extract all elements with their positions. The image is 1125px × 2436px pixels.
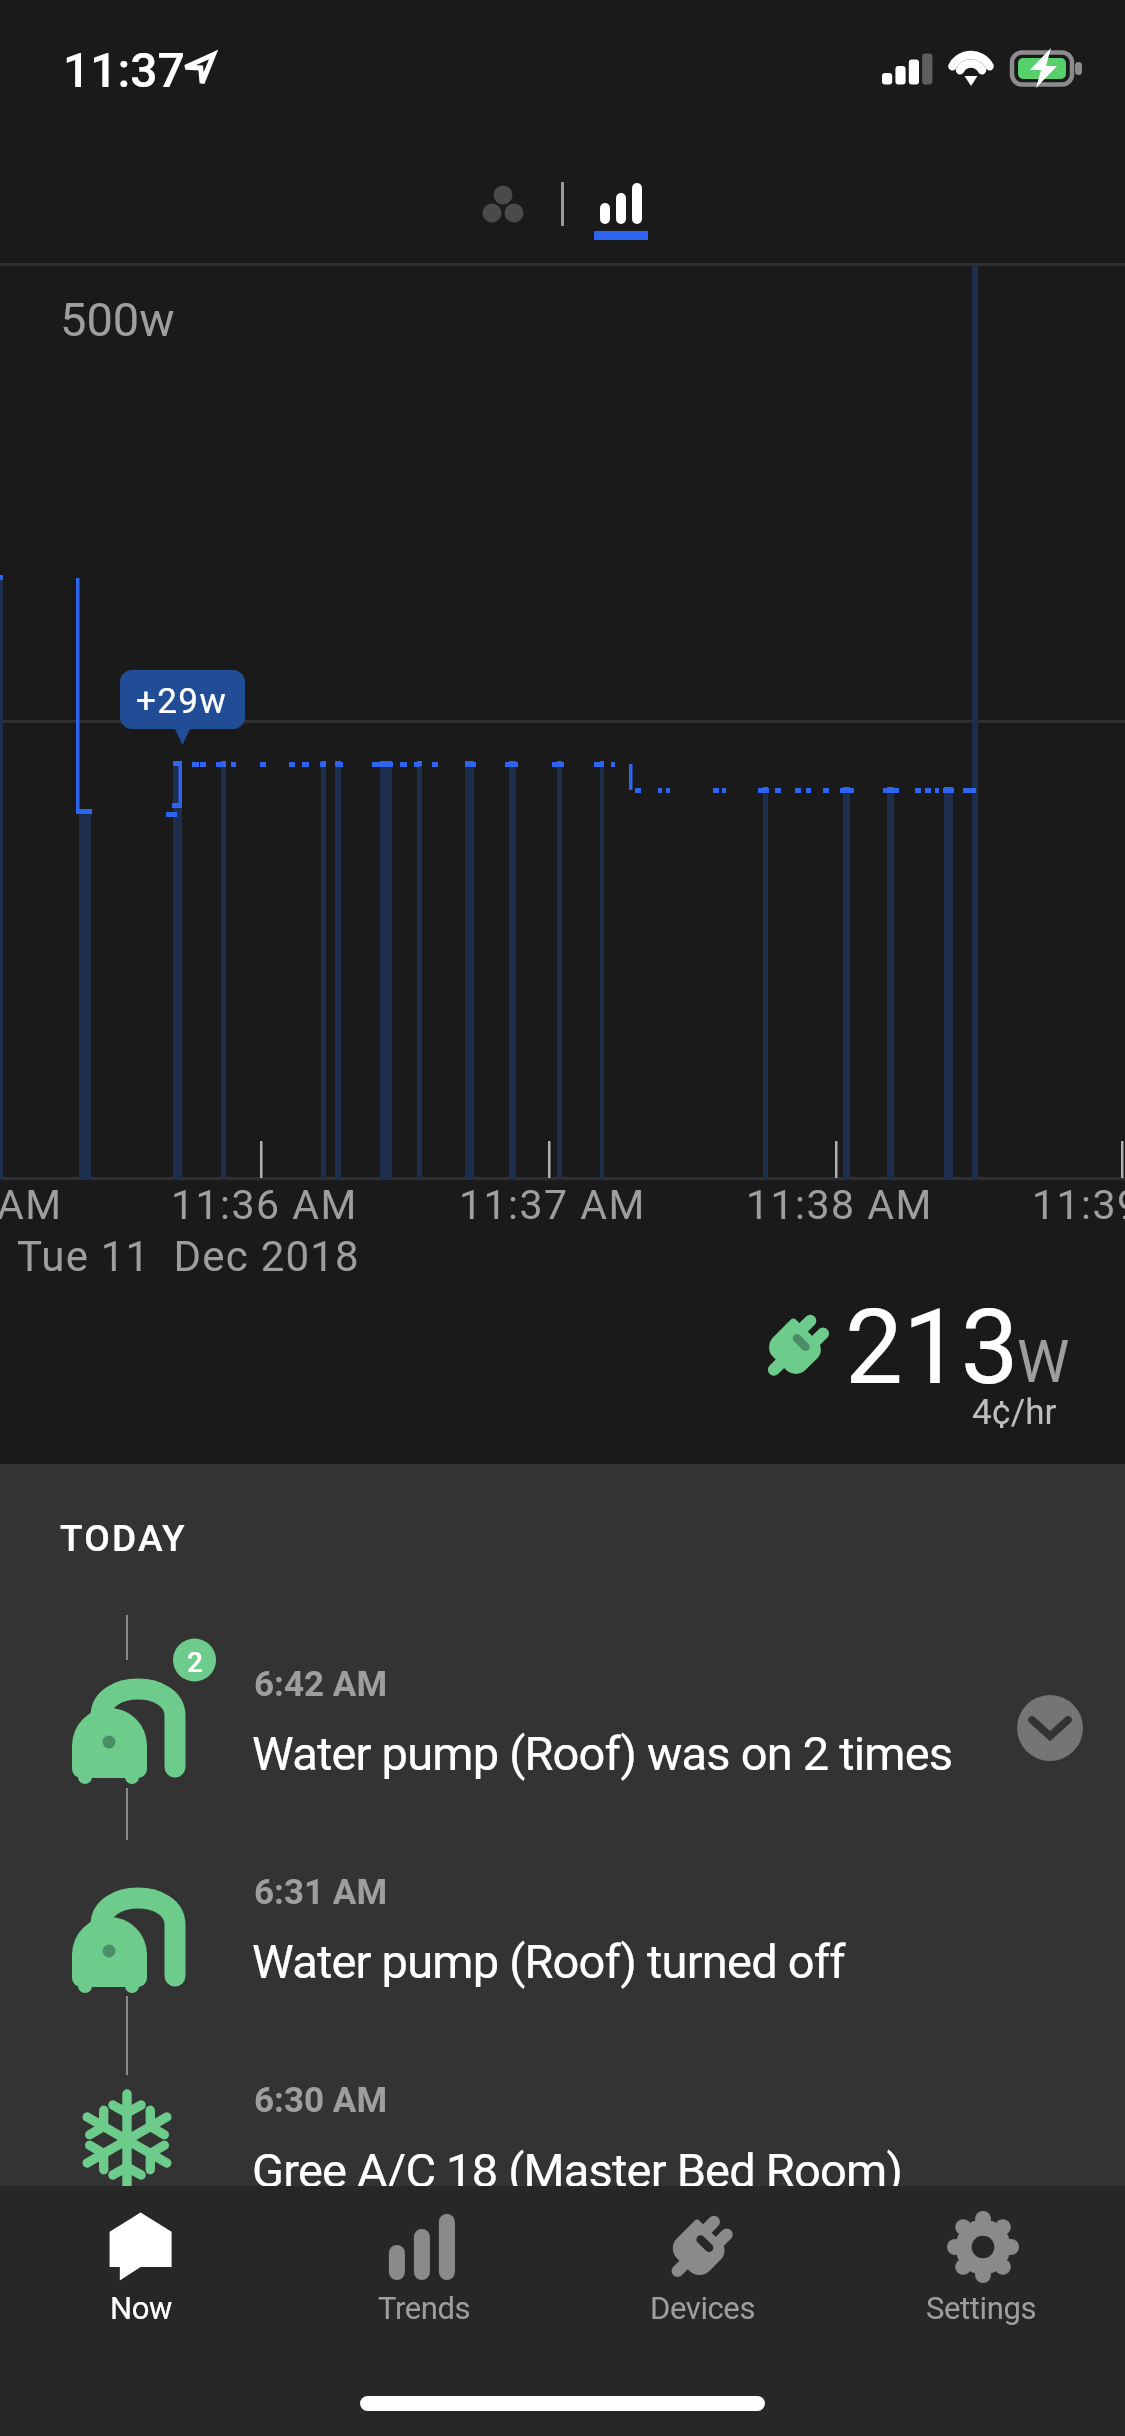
staticText: 2 xyxy=(187,1646,203,1679)
staticText: 6:31 AM xyxy=(254,1872,388,1913)
staticText: Trends xyxy=(378,2290,471,2326)
staticText: 6:42 AM xyxy=(254,1664,388,1705)
button[interactable]: 6:30 AM xyxy=(0,2016,1125,2186)
staticText: Water pump (Roof) turned off xyxy=(252,1934,845,1989)
staticText: Devices xyxy=(650,2290,756,2326)
button[interactable]: Settings xyxy=(844,2186,1125,2346)
button[interactable]: 6:31 AM xyxy=(0,1808,1125,2016)
staticText: TODAY xyxy=(60,1517,187,1560)
button[interactable]: Trends xyxy=(281,2186,562,2346)
button[interactable]: Devices xyxy=(562,2186,843,2346)
staticText: 11:37 AM xyxy=(459,1181,646,1229)
staticText: Tue 11 Dec 2018 xyxy=(17,1232,360,1281)
staticText: +29w xyxy=(136,681,228,722)
button[interactable]: Power meter xyxy=(580,160,665,250)
staticText: 11:36 AM xyxy=(171,1181,358,1229)
staticText: 11:38 AM xyxy=(746,1181,933,1229)
staticText: 213 xyxy=(845,1287,1019,1408)
staticText: 4¢/hr xyxy=(972,1392,1057,1433)
button[interactable]: Now xyxy=(0,2186,281,2346)
button[interactable]: Devices overview xyxy=(455,160,555,250)
staticText: AM xyxy=(0,1181,63,1229)
staticText: Gree A/C 18 (Master Bed Room) xyxy=(252,2143,902,2198)
staticText: 11:37 xyxy=(63,42,185,98)
staticText: 500w xyxy=(60,292,175,347)
staticText: Water pump (Roof) was on 2 times xyxy=(252,1726,953,1781)
button[interactable]: 2 xyxy=(0,1600,1125,1808)
staticText: Settings xyxy=(926,2290,1036,2326)
staticText: 6:30 AM xyxy=(254,2080,388,2121)
staticText: W xyxy=(1017,1327,1070,1396)
staticText: 11:39 xyxy=(1032,1181,1125,1229)
button[interactable]: Expand details xyxy=(1004,1682,1096,1774)
staticText: Now xyxy=(110,2290,172,2326)
